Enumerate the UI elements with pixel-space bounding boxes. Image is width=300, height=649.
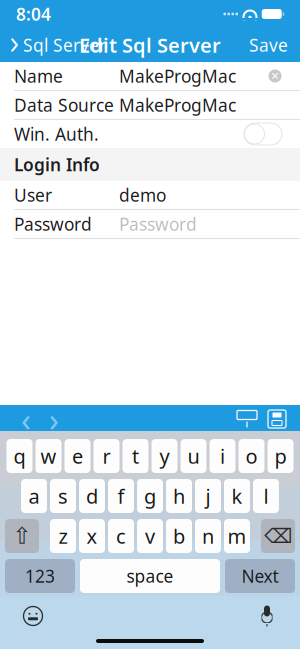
staticText: k <box>231 483 242 509</box>
button[interactable]: i <box>209 439 235 473</box>
button[interactable]: Next <box>225 559 295 593</box>
button[interactable]: y <box>151 439 177 473</box>
staticText: e <box>72 443 83 469</box>
staticText: o <box>245 443 257 469</box>
staticText: › <box>49 398 59 440</box>
staticText: w <box>40 443 56 469</box>
button[interactable]: a <box>21 479 47 513</box>
button[interactable]: e <box>64 439 90 473</box>
button[interactable]: v <box>137 519 163 553</box>
staticText: g <box>144 483 156 509</box>
button[interactable]: Windows Authentication toggle, off <box>240 120 286 148</box>
button[interactable]: Save <box>237 28 300 62</box>
staticText: p <box>274 443 286 469</box>
staticText: c <box>116 523 126 549</box>
button[interactable]: User <box>0 181 300 209</box>
button[interactable]: c <box>108 519 134 553</box>
button[interactable]: Sql Server <box>0 28 116 62</box>
staticText: m <box>227 523 246 549</box>
button[interactable]: f <box>108 479 134 513</box>
button[interactable]: x <box>79 519 105 553</box>
staticText: v <box>145 523 155 549</box>
button[interactable]: 123 <box>5 559 75 593</box>
button[interactable]: Dictation <box>252 601 282 631</box>
staticText: 8:04 <box>16 2 51 25</box>
staticText: Win. Auth. <box>14 122 99 145</box>
staticText: x <box>86 523 97 549</box>
button[interactable]: h <box>166 479 192 513</box>
staticText: Edit Sql Server <box>79 32 221 58</box>
staticText: z <box>58 523 67 549</box>
staticText: User <box>14 183 52 206</box>
button[interactable]: p <box>267 439 293 473</box>
staticText: d <box>86 483 98 509</box>
button[interactable]: b <box>166 519 192 553</box>
button[interactable]: Delete <box>261 519 295 553</box>
button[interactable]: Hide keyboard <box>236 409 258 429</box>
staticText: 123 <box>25 564 55 587</box>
button[interactable]: Emoji keyboard <box>18 601 48 631</box>
staticText: a <box>28 483 39 509</box>
staticText: ✕ <box>270 70 279 82</box>
staticText: space <box>126 564 173 587</box>
button[interactable]: n <box>195 519 221 553</box>
staticText: t <box>132 443 139 469</box>
staticText: MakeProgMac <box>119 93 236 116</box>
staticText: u <box>187 443 199 469</box>
button[interactable]: Next field <box>40 405 68 433</box>
staticText: y <box>159 443 169 469</box>
staticText: ⇧ <box>12 523 31 549</box>
button[interactable]: s <box>50 479 76 513</box>
staticText: i <box>220 443 225 469</box>
button[interactable]: t <box>122 439 148 473</box>
button[interactable]: o <box>238 439 264 473</box>
staticText: n <box>202 523 214 549</box>
staticText: h <box>173 483 185 509</box>
staticText: Password <box>14 212 92 235</box>
button[interactable]: m <box>224 519 250 553</box>
staticText: Data Source <box>14 93 114 116</box>
button[interactable]: d <box>79 479 105 513</box>
button[interactable]: r <box>93 439 119 473</box>
button[interactable]: Previous field <box>12 405 40 433</box>
staticText: j <box>205 483 210 509</box>
staticText: f <box>117 483 124 509</box>
button[interactable]: k <box>224 479 250 513</box>
staticText: q <box>13 443 25 469</box>
staticText: Sql Server <box>23 33 106 56</box>
staticText: ⌫ <box>264 525 292 547</box>
button[interactable]: Data Source <box>0 91 300 119</box>
button[interactable]: q <box>6 439 32 473</box>
button[interactable]: Save <box>266 409 288 429</box>
staticText: Next <box>241 564 278 587</box>
button[interactable]: Win. Auth. <box>0 120 300 148</box>
staticText: s <box>58 483 68 509</box>
button[interactable]: j <box>195 479 221 513</box>
staticText: b <box>173 523 185 549</box>
button[interactable]: g <box>137 479 163 513</box>
button[interactable]: Clear text <box>264 65 286 87</box>
button[interactable]: l <box>253 479 279 513</box>
button[interactable]: space <box>80 559 220 593</box>
button[interactable]: z <box>50 519 76 553</box>
staticText: l <box>263 483 268 509</box>
button[interactable]: w <box>35 439 61 473</box>
staticText: Password <box>119 212 197 235</box>
button[interactable]: Password <box>0 210 300 238</box>
button[interactable]: Name <box>0 62 300 90</box>
staticText: MakeProgMac <box>119 64 236 87</box>
button[interactable]: u <box>180 439 206 473</box>
staticText: Login Info <box>14 153 100 176</box>
staticText: r <box>102 443 110 469</box>
staticText: ‹ <box>21 398 31 440</box>
staticText: Save <box>249 33 288 56</box>
staticText: demo <box>119 183 166 206</box>
button[interactable]: Shift <box>5 519 39 553</box>
staticText: Name <box>14 64 63 87</box>
